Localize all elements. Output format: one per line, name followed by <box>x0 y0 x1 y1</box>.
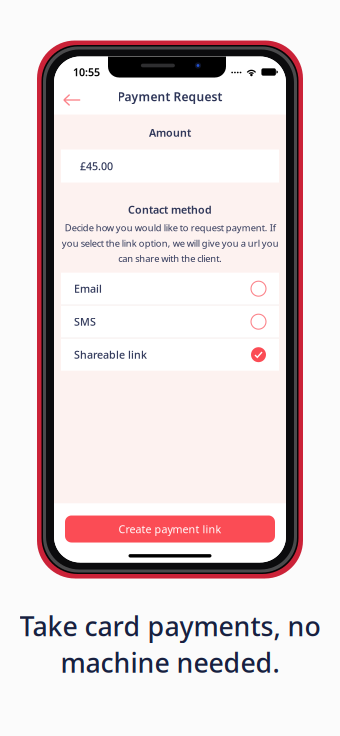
button[interactable]: SMS <box>61 306 279 338</box>
staticText: Amount <box>149 125 191 140</box>
staticText: 10:55 <box>73 65 100 79</box>
button[interactable]: Back <box>54 87 90 111</box>
staticText: Shareable link <box>74 348 147 362</box>
button[interactable]: Shareable link <box>61 339 279 371</box>
staticText: Create payment link <box>118 522 221 536</box>
staticText: Contact method <box>128 202 212 217</box>
staticText: Email <box>74 282 102 296</box>
staticText: £45.00 <box>80 159 113 173</box>
button[interactable]: Create payment link <box>65 515 275 542</box>
staticText: Decide how you would like to request pay… <box>61 221 278 265</box>
staticText: SMS <box>74 315 96 329</box>
staticText: Take card payments, no <box>19 608 320 644</box>
staticText: Payment Request <box>117 88 222 104</box>
button[interactable]: Email <box>61 273 279 305</box>
staticText: machine needed. <box>60 645 279 680</box>
